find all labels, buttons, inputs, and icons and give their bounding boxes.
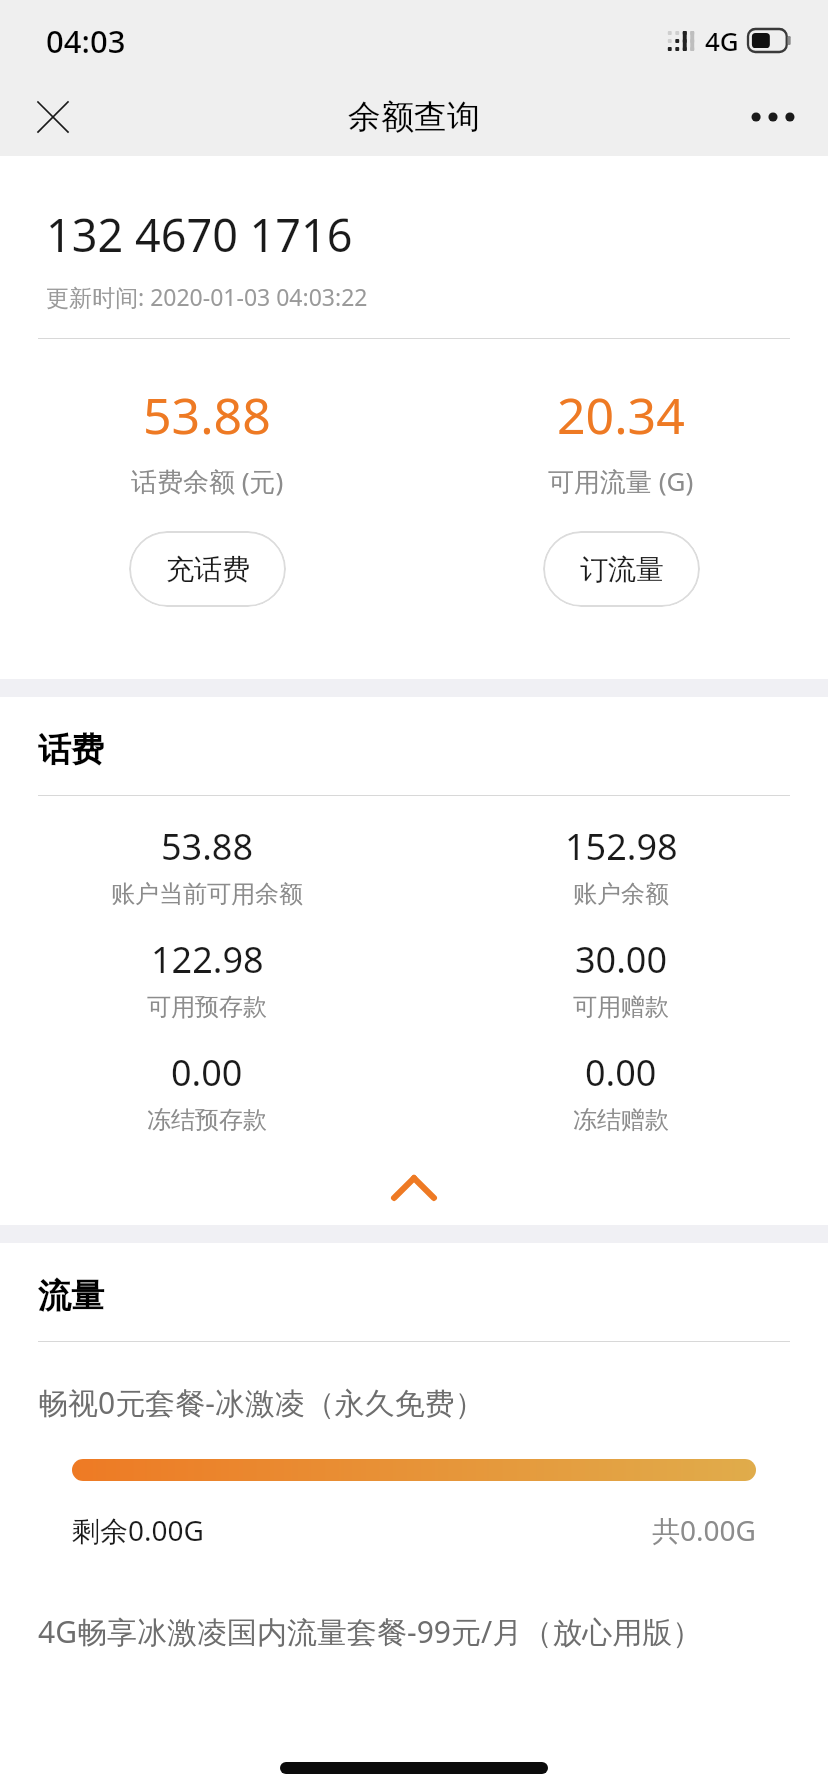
staticText: 152.98 bbox=[565, 822, 678, 871]
staticText: 账户当前可用余额 bbox=[111, 879, 303, 909]
staticText: 冻结预存款 bbox=[147, 1105, 267, 1135]
staticText: 更新时间: 2020-01-03 04:03:22 bbox=[46, 281, 368, 312]
staticText: 畅视0元套餐-冰激凌（永久免费） bbox=[38, 1382, 485, 1423]
staticText: 122.98 bbox=[151, 935, 264, 984]
staticText: 话费 bbox=[38, 729, 104, 771]
staticText: 可用赠款 bbox=[573, 992, 669, 1022]
staticText: 0.00 bbox=[171, 1048, 243, 1097]
staticText: 53.88 bbox=[161, 822, 254, 871]
staticText: 4G畅享冰激凌国内流量套餐-99元/月（放心用版） bbox=[38, 1611, 703, 1652]
button[interactable]: More options bbox=[740, 84, 806, 150]
button[interactable]: Close bbox=[20, 84, 86, 150]
button[interactable]: 充话费 bbox=[129, 531, 286, 607]
staticText: 流量 bbox=[38, 1275, 104, 1317]
button[interactable]: Collapse bbox=[0, 1157, 828, 1219]
staticText: 0.00 bbox=[585, 1048, 657, 1097]
button[interactable]: 订流量 bbox=[543, 531, 700, 607]
staticText: 账户余额 bbox=[573, 879, 669, 909]
staticText: 53.88 bbox=[143, 381, 271, 449]
staticText: 20.34 bbox=[557, 381, 685, 449]
staticText: 04:03 bbox=[46, 20, 126, 62]
staticText: 可用流量 (G) bbox=[548, 463, 694, 499]
staticText: 余额查询 bbox=[348, 96, 480, 138]
staticText: 冻结赠款 bbox=[573, 1105, 669, 1135]
staticText: 共0.00G bbox=[652, 1511, 756, 1549]
staticText: 可用预存款 bbox=[147, 992, 267, 1022]
staticText: 话费余额 (元) bbox=[131, 463, 284, 499]
staticText: 剩余0.00G bbox=[72, 1511, 204, 1549]
staticText: 132 4670 1716 bbox=[46, 204, 353, 265]
staticText: 充话费 bbox=[166, 552, 250, 587]
staticText: 30.00 bbox=[575, 935, 668, 984]
staticText: 4G bbox=[705, 23, 739, 58]
staticText: 订流量 bbox=[580, 552, 664, 587]
